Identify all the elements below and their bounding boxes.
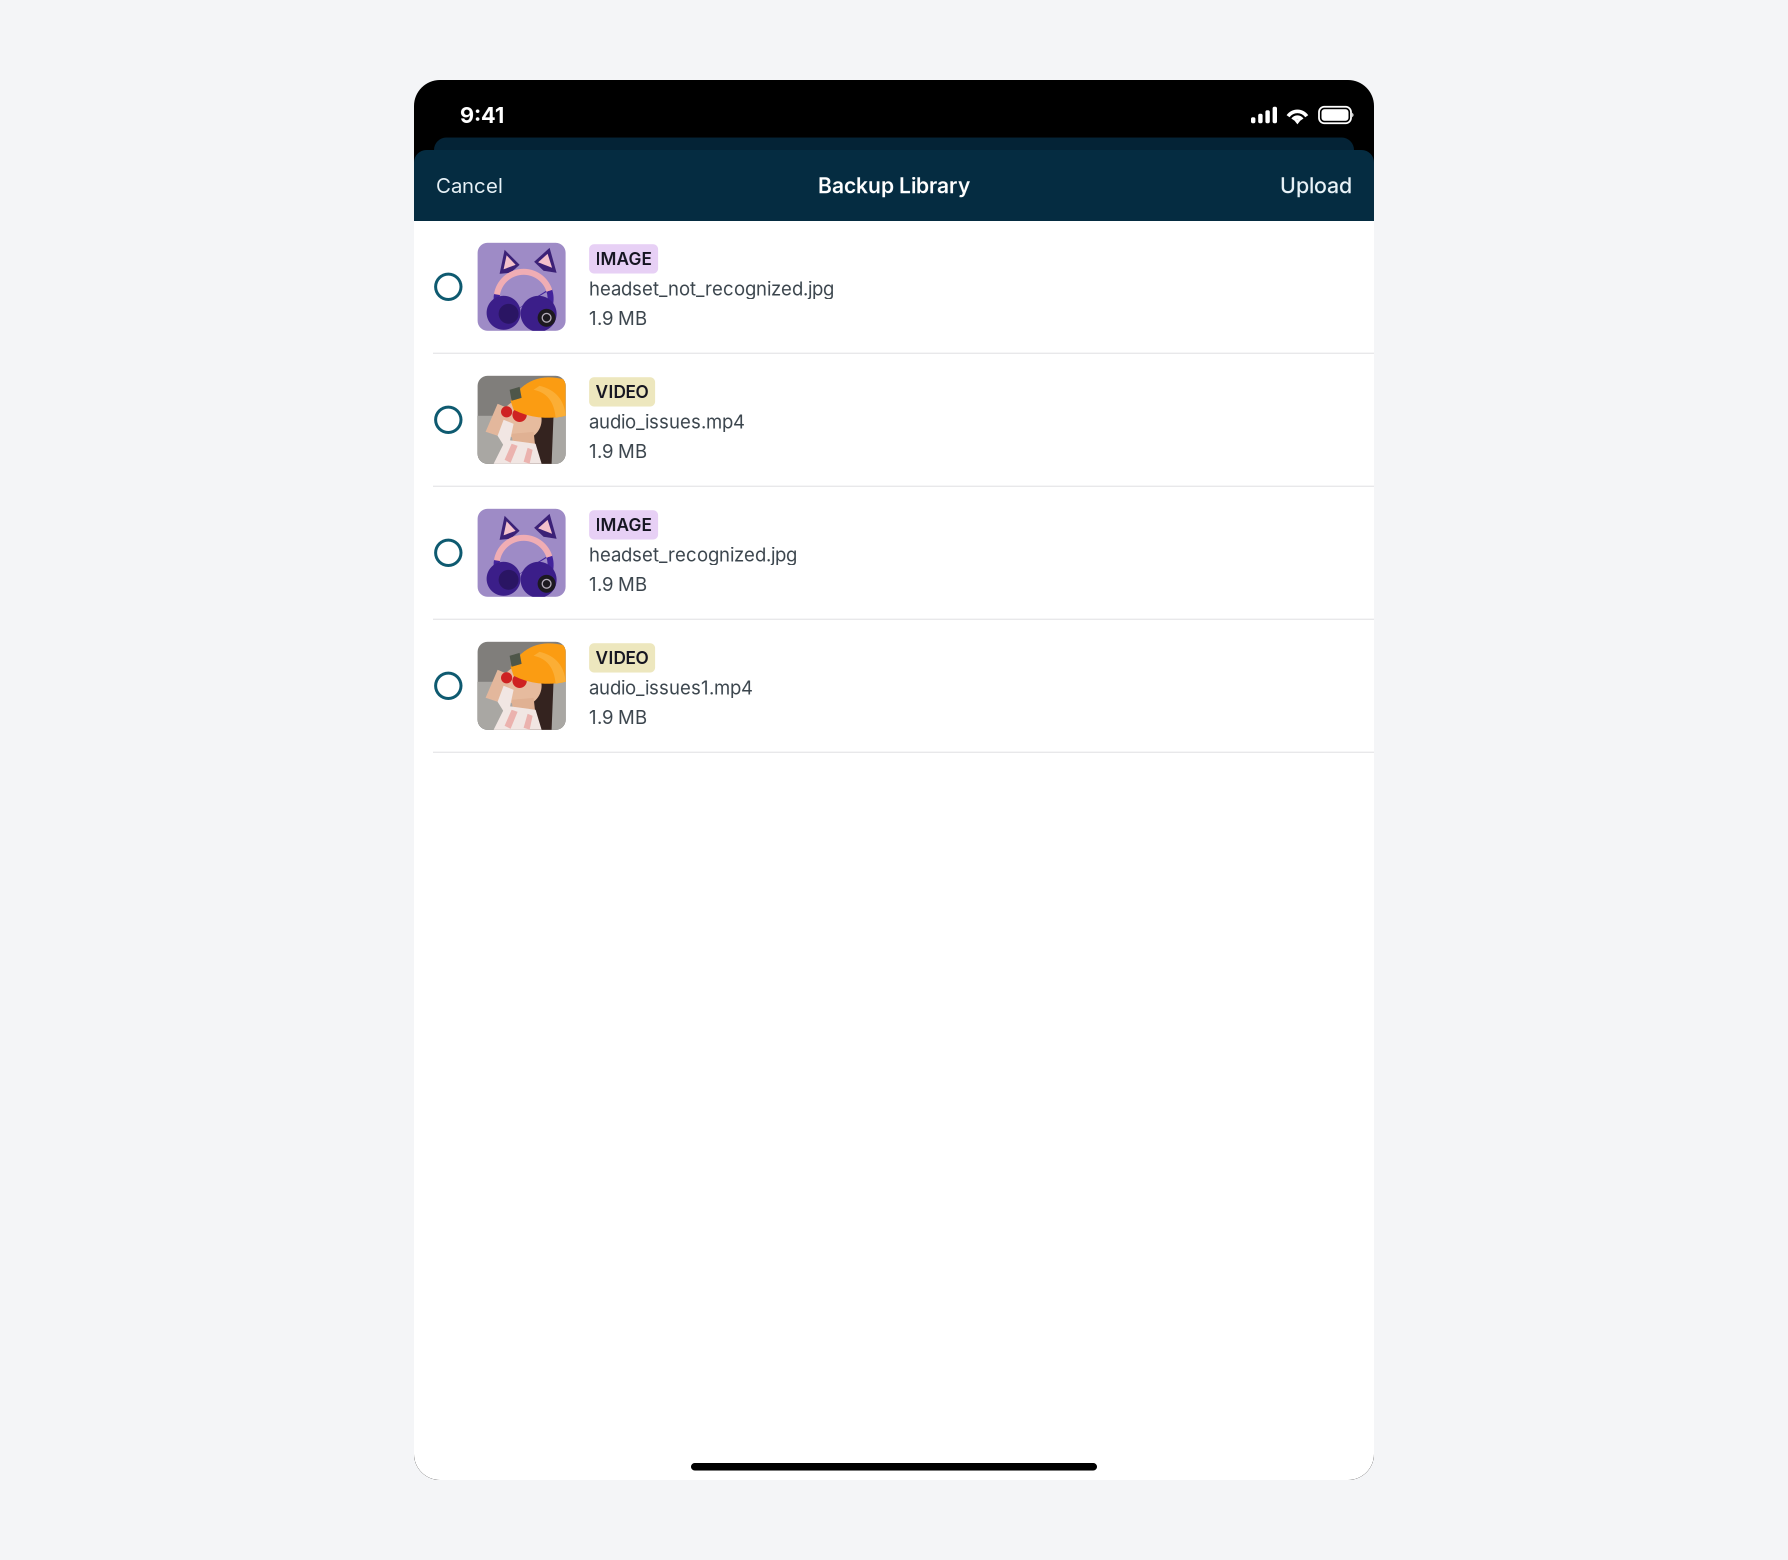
staticText: Backup Library <box>818 173 970 198</box>
staticText: headset_recognized.jpg <box>589 543 797 566</box>
staticText: 1.9 MB <box>589 706 647 728</box>
staticText: Cancel <box>436 173 503 198</box>
staticText: 1.9 MB <box>589 573 647 595</box>
staticText: VIDEO <box>596 647 649 668</box>
staticText: headset_not_recognized.jpg <box>589 277 834 300</box>
staticText: audio_issues.mp4 <box>589 410 745 433</box>
staticText: VIDEO <box>596 381 649 402</box>
staticText: 1.9 MB <box>589 307 647 329</box>
button[interactable]: VIDEO <box>414 354 1374 486</box>
button[interactable]: Upload <box>1260 150 1374 221</box>
staticText: IMAGE <box>596 248 652 269</box>
staticText: 1.9 MB <box>589 440 647 462</box>
staticText: 9:41 <box>460 102 504 128</box>
staticText: audio_issues1.mp4 <box>589 676 753 699</box>
button[interactable]: VIDEO <box>414 620 1374 752</box>
staticText: IMAGE <box>596 514 652 535</box>
button[interactable]: IMAGE <box>414 221 1374 353</box>
staticText: Upload <box>1280 172 1352 198</box>
button[interactable]: IMAGE <box>414 487 1374 619</box>
button[interactable]: Cancel <box>414 150 523 221</box>
